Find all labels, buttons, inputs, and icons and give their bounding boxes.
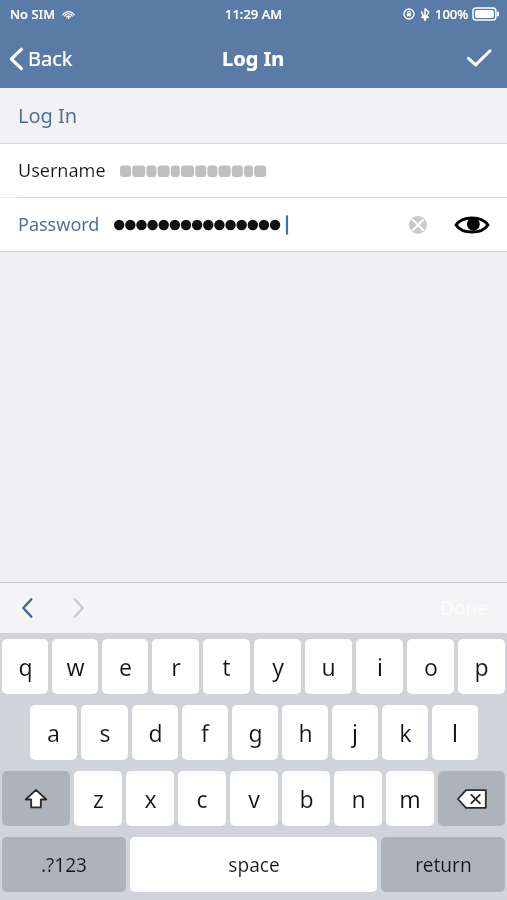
staticText: No SIM bbox=[10, 5, 56, 23]
button[interactable]: d bbox=[132, 705, 178, 760]
staticText: k bbox=[399, 717, 412, 748]
button[interactable]: j bbox=[332, 705, 378, 760]
button[interactable]: b bbox=[282, 771, 330, 826]
button[interactable]: t bbox=[203, 639, 250, 694]
button[interactable]: v bbox=[230, 771, 278, 826]
button[interactable]: h bbox=[282, 705, 328, 760]
staticText: Log In bbox=[18, 102, 78, 129]
staticText: o bbox=[424, 651, 438, 682]
staticText: l bbox=[452, 717, 458, 748]
button[interactable]: m bbox=[386, 771, 434, 826]
staticText: w bbox=[66, 651, 85, 682]
staticText: c bbox=[196, 783, 208, 814]
staticText: t bbox=[222, 651, 231, 682]
button[interactable]: Password bbox=[0, 198, 507, 251]
staticText: .?123 bbox=[41, 852, 87, 878]
staticText: v bbox=[248, 783, 260, 814]
staticText: g bbox=[248, 717, 263, 748]
button[interactable]: k bbox=[382, 705, 428, 760]
button[interactable]: Username bbox=[0, 144, 507, 197]
staticText: u bbox=[321, 651, 336, 682]
button[interactable]: x bbox=[126, 771, 174, 826]
staticText: Log In bbox=[222, 45, 285, 72]
staticText: p bbox=[474, 651, 489, 682]
staticText: space bbox=[228, 852, 280, 878]
button[interactable]: o bbox=[407, 639, 454, 694]
staticText: j bbox=[352, 717, 358, 748]
staticText: n bbox=[351, 783, 366, 814]
button[interactable]: space bbox=[130, 837, 377, 892]
button[interactable]: Confirm bbox=[451, 37, 507, 79]
staticText: Username bbox=[18, 158, 106, 183]
button[interactable]: i bbox=[356, 639, 403, 694]
button[interactable]: e bbox=[102, 639, 148, 694]
button[interactable]: q bbox=[2, 639, 48, 694]
button[interactable]: Next field bbox=[65, 590, 92, 626]
button[interactable]: a bbox=[30, 705, 77, 760]
staticText: e bbox=[119, 651, 132, 682]
staticText: b bbox=[299, 783, 314, 814]
staticText: x bbox=[144, 783, 157, 814]
button[interactable]: Previous field bbox=[14, 590, 41, 626]
button[interactable]: f bbox=[182, 705, 228, 760]
button[interactable]: z bbox=[74, 771, 122, 826]
button[interactable]: u bbox=[305, 639, 352, 694]
button[interactable]: Backspace bbox=[438, 771, 505, 826]
staticText: return bbox=[415, 852, 472, 878]
button[interactable]: r bbox=[152, 639, 199, 694]
button[interactable]: s bbox=[81, 705, 128, 760]
button[interactable]: return bbox=[381, 837, 505, 892]
button[interactable]: .?123 bbox=[2, 837, 126, 892]
button[interactable]: y bbox=[254, 639, 301, 694]
staticText: 100% bbox=[435, 5, 469, 23]
button[interactable]: Shift bbox=[2, 771, 70, 826]
button[interactable]: n bbox=[334, 771, 382, 826]
staticText: Password bbox=[18, 212, 100, 237]
staticText: s bbox=[99, 717, 111, 748]
staticText: i bbox=[377, 651, 383, 682]
button[interactable]: Clear text bbox=[401, 208, 435, 242]
staticText: y bbox=[272, 651, 284, 682]
staticText: Back bbox=[28, 45, 73, 72]
button[interactable]: w bbox=[52, 639, 98, 694]
staticText: q bbox=[18, 651, 33, 682]
staticText: 11:29 AM bbox=[225, 5, 283, 23]
staticText: h bbox=[298, 717, 313, 748]
button[interactable]: Show password bbox=[449, 206, 495, 244]
staticText: m bbox=[399, 783, 421, 814]
button[interactable]: g bbox=[232, 705, 278, 760]
staticText: a bbox=[47, 717, 60, 748]
button[interactable]: c bbox=[178, 771, 226, 826]
button[interactable]: p bbox=[458, 639, 505, 694]
staticText: f bbox=[201, 717, 209, 748]
staticText: d bbox=[148, 717, 163, 748]
button[interactable]: l bbox=[432, 705, 478, 760]
staticText: r bbox=[171, 651, 181, 682]
staticText: z bbox=[93, 783, 104, 814]
button[interactable]: Back bbox=[0, 37, 87, 80]
